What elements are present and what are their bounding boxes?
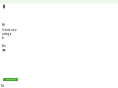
- button[interactable]: Back: [0, 3, 7, 10]
- staticText: using a: [2, 32, 12, 35]
- staticText: Em: [2, 44, 6, 47]
- staticText: fr: [2, 36, 5, 39]
- staticText: Create an a: [2, 28, 17, 31]
- button[interactable]: CONTINUE: [3, 78, 18, 81]
- button[interactable]: Account avatar: [1, 47, 7, 53]
- staticText: Hi: [2, 23, 5, 26]
- staticText: CONTINUE: [6, 78, 16, 81]
- button[interactable]: Sk: [1, 84, 5, 87]
